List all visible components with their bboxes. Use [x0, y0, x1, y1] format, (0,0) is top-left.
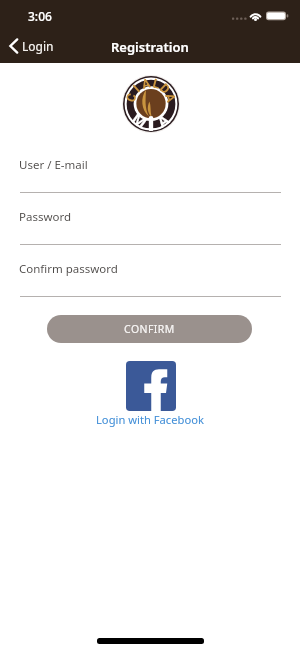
staticText: Password [19, 209, 72, 225]
staticText: User / E-mail [19, 157, 88, 173]
staticText: Login [22, 38, 54, 54]
button[interactable]: CONFIRM [47, 315, 252, 343]
button[interactable]: Login with Facebook [96, 412, 204, 427]
button[interactable]: Login [5, 36, 62, 56]
button[interactable]: Login with Facebook [126, 361, 176, 411]
staticText: Confirm password [19, 261, 118, 277]
staticText: 3:06 [28, 8, 52, 24]
staticText: Registration [111, 38, 189, 56]
staticText: CONFIRM [124, 322, 175, 336]
